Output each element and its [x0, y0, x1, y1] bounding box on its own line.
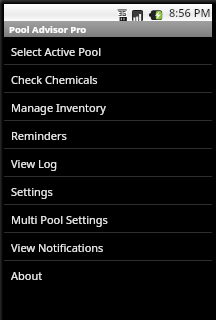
staticText: Pool Advisor Pro [9, 23, 87, 36]
button[interactable]: Check Chemicals [4, 65, 212, 93]
staticText: Manage Inventory [11, 100, 106, 115]
staticText: Reminders [11, 128, 67, 143]
staticText: Settings [11, 184, 53, 199]
button[interactable]: Multi Pool Settings [4, 205, 212, 233]
button[interactable]: View Log [4, 149, 212, 177]
button[interactable]: View Notifications [4, 233, 212, 261]
button[interactable]: About [4, 261, 212, 289]
staticText: 8:56 PM [169, 5, 211, 20]
staticText: Check Chemicals [11, 72, 98, 87]
staticText: View Notifications [11, 240, 104, 255]
button[interactable]: Reminders [4, 121, 212, 149]
staticText: Select Active Pool [11, 44, 101, 59]
staticText: About [11, 268, 43, 283]
staticText: View Log [11, 156, 58, 171]
staticText: Multi Pool Settings [11, 212, 108, 227]
button[interactable]: Manage Inventory [4, 93, 212, 121]
button[interactable]: Select Active Pool [4, 37, 212, 65]
button[interactable]: Settings [4, 177, 212, 205]
